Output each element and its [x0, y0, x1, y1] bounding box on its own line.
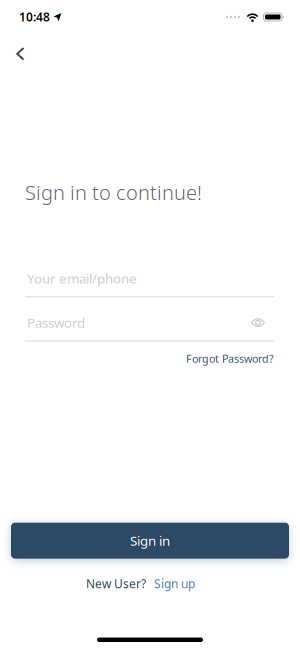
button[interactable]: Show password [251, 318, 274, 327]
staticText: 10:48 [19, 9, 50, 25]
staticText: Sign up [154, 576, 195, 591]
staticText: Forgot Password? [186, 351, 274, 366]
button[interactable]: Forgot Password? [186, 351, 274, 366]
button[interactable]: Sign up [154, 576, 195, 591]
button[interactable]: Back [0, 32, 25, 61]
staticText: Sign in to continue! [25, 179, 202, 206]
staticText: Sign in [130, 532, 170, 549]
staticText: Your email/phone [27, 270, 137, 287]
button[interactable]: Sign in [0, 523, 300, 559]
staticText: Password [27, 314, 85, 331]
staticText: New User? [86, 576, 146, 591]
